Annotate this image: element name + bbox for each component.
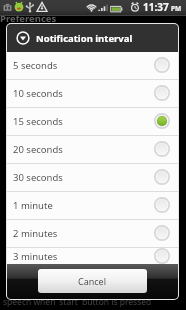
staticText: speech when 'start' button is pressed xyxy=(3,296,152,308)
staticText: 10 seconds xyxy=(13,87,63,100)
staticText: Cancel xyxy=(78,275,107,287)
button[interactable]: 10 seconds xyxy=(7,80,178,107)
staticText: 11:37 xyxy=(143,0,169,13)
button[interactable]: 3 minutes xyxy=(7,248,178,265)
staticText: Preferences xyxy=(0,12,57,25)
button[interactable]: 1 minute xyxy=(7,192,178,219)
button[interactable]: 15 seconds xyxy=(7,108,178,135)
button[interactable]: 5 seconds xyxy=(7,52,178,79)
staticText: Notification interval xyxy=(36,32,133,45)
staticText: 30 seconds xyxy=(13,171,63,184)
staticText: 15 seconds xyxy=(13,115,63,128)
button[interactable]: 20 seconds xyxy=(7,136,178,163)
button[interactable]: 2 minutes xyxy=(7,220,178,247)
staticText: 3 minutes xyxy=(13,250,58,263)
staticText: 20 seconds xyxy=(13,143,63,156)
staticText: 2 minutes xyxy=(13,227,58,240)
button[interactable]: 30 seconds xyxy=(7,164,178,191)
staticText: 1 minute xyxy=(13,199,53,212)
button[interactable]: Cancel xyxy=(38,269,147,293)
staticText: 5 seconds xyxy=(13,59,58,72)
staticText: PM xyxy=(171,4,182,13)
